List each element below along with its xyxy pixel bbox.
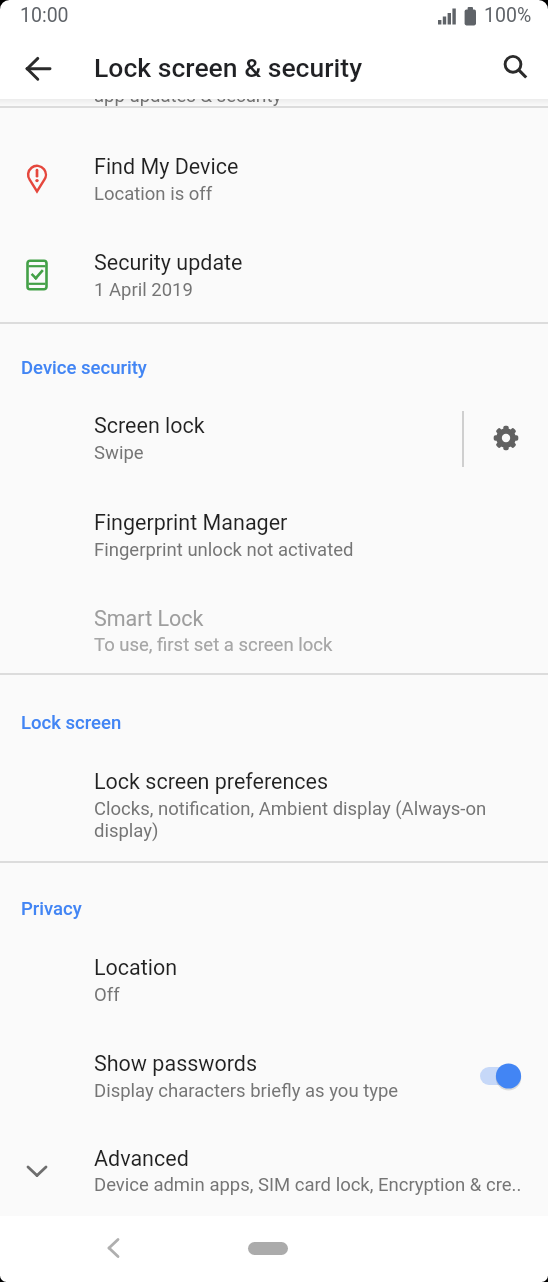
button[interactable]	[462, 1038, 538, 1114]
button[interactable]: Location	[0, 932, 548, 1028]
staticText: Show passwords	[94, 1051, 258, 1076]
staticText: Off	[94, 984, 120, 1006]
staticText: Swipe	[94, 442, 144, 464]
button[interactable]	[89, 1224, 137, 1272]
staticText: Lock screen preferences	[94, 769, 329, 794]
staticText: Find My Device	[94, 154, 239, 179]
button[interactable]	[248, 1242, 288, 1255]
button[interactable]	[493, 44, 541, 92]
staticText: Screen lock	[94, 413, 205, 438]
staticText: Fingerprint unlock not activated	[94, 539, 354, 561]
staticText: 10:00	[20, 4, 69, 27]
button[interactable]: Advanced	[0, 1124, 548, 1216]
staticText: app updates & security	[94, 99, 282, 107]
button[interactable]: Screen lock	[0, 386, 548, 482]
staticText: 100%	[484, 4, 532, 27]
staticText: Smart Lock	[94, 606, 204, 631]
button[interactable]: Fingerprint Manager	[0, 482, 548, 578]
staticText: Device security	[21, 357, 147, 379]
button[interactable]	[13, 44, 61, 92]
staticText: Security update	[94, 250, 243, 275]
button[interactable]: Show passwords	[0, 1028, 548, 1124]
staticText: 1 April 2019	[94, 279, 193, 301]
staticText: Clocks, notification, Ambient display (A…	[94, 798, 487, 820]
button[interactable]: Smart Lock	[0, 578, 548, 674]
button[interactable]	[470, 393, 548, 475]
staticText: Location	[94, 955, 178, 980]
button[interactable]: Find My Device	[0, 131, 548, 227]
staticText: Privacy	[21, 898, 82, 920]
staticText: Lock screen & security	[94, 52, 363, 83]
staticText: Lock screen	[21, 712, 122, 734]
button[interactable]: Security update	[0, 227, 548, 323]
button[interactable]: Lock screen preferences	[0, 743, 548, 861]
staticText: display)	[94, 820, 159, 842]
staticText: Location is off	[94, 183, 213, 205]
staticText: Advanced	[94, 1146, 189, 1171]
staticText: Device admin apps, SIM card lock, Encryp…	[94, 1174, 522, 1196]
staticText: Display characters briefly as you type	[94, 1080, 399, 1102]
staticText: To use, first set a screen lock	[94, 634, 333, 656]
staticText: Fingerprint Manager	[94, 510, 288, 535]
